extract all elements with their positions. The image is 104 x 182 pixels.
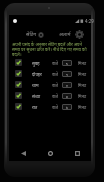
staticText: मिनट bbox=[78, 60, 87, 66]
button[interactable]: ७ bbox=[62, 104, 72, 110]
button[interactable]: संध्या bbox=[9, 90, 91, 101]
staticText: बजे bbox=[49, 60, 58, 66]
staticText: बजे bbox=[49, 82, 58, 88]
button[interactable]: Settings bbox=[59, 28, 84, 41]
staticText: ९ bbox=[66, 72, 68, 77]
button[interactable]: सेटिंग bbox=[26, 29, 44, 40]
button[interactable]: १ bbox=[62, 82, 72, 88]
button[interactable]: ९ bbox=[62, 71, 72, 77]
button[interactable]: ४ bbox=[62, 93, 72, 99]
staticText: शाम bbox=[32, 82, 39, 88]
button[interactable]: रात bbox=[9, 101, 91, 112]
staticText: ४ bbox=[66, 94, 68, 99]
button[interactable]: शाम bbox=[9, 79, 91, 90]
staticText: बजे bbox=[49, 104, 58, 110]
staticText: संध्या bbox=[32, 93, 41, 99]
staticText: अपनी पसंद के अनुसार सेटिंग बदलें और अपने… bbox=[12, 41, 90, 57]
staticText: सेटिंग bbox=[26, 31, 37, 38]
staticText: मिनट bbox=[78, 93, 87, 99]
staticText: सुबह bbox=[32, 60, 40, 66]
button[interactable]: सुबह bbox=[9, 57, 91, 68]
staticText: अलार्म bbox=[59, 31, 71, 38]
button[interactable]: Back bbox=[9, 146, 37, 161]
staticText: रात bbox=[32, 104, 38, 110]
staticText: ७ bbox=[66, 105, 68, 110]
button[interactable]: दोपहर bbox=[9, 68, 91, 79]
staticText: बजे bbox=[49, 93, 58, 99]
staticText: मिनट bbox=[78, 71, 87, 77]
button[interactable]: Recents bbox=[64, 146, 91, 161]
staticText: बजे bbox=[49, 71, 58, 77]
staticText: दोपहर bbox=[32, 71, 42, 77]
button[interactable]: Home bbox=[37, 146, 64, 161]
staticText: मिनट bbox=[78, 82, 87, 88]
staticText: मिनट bbox=[78, 104, 87, 110]
button[interactable]: ६ bbox=[62, 60, 72, 66]
staticText: 4:29 bbox=[85, 18, 94, 24]
staticText: १ bbox=[66, 83, 68, 88]
staticText: ६ bbox=[66, 61, 68, 66]
